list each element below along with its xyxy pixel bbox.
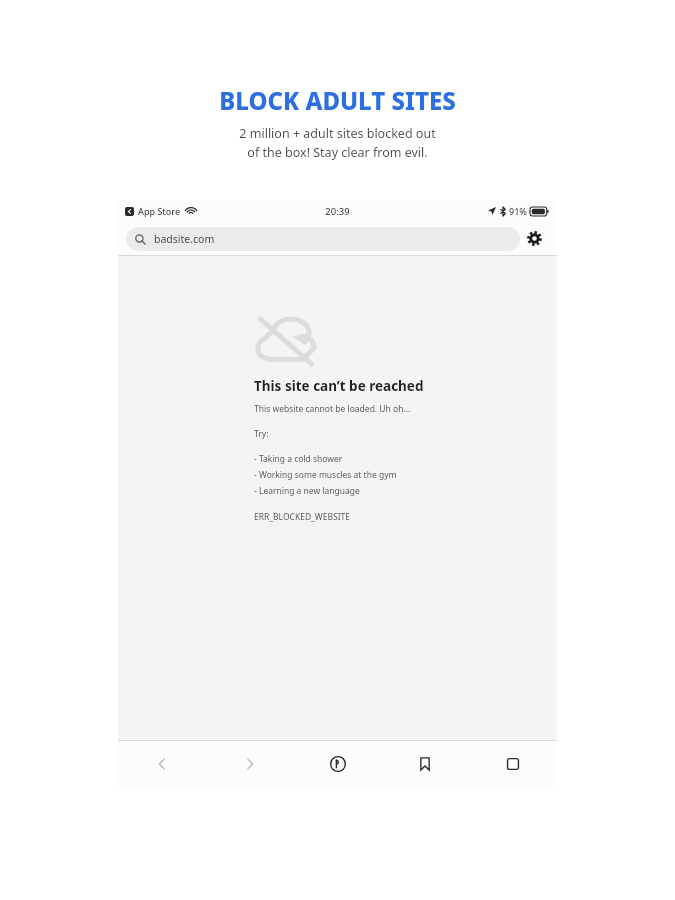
button[interactable]: Back <box>140 744 184 784</box>
button[interactable]: badsite.com <box>126 227 520 251</box>
staticText: - Taking a cold shower <box>254 453 343 465</box>
staticText: 2 million + adult sites blocked out <box>239 125 436 142</box>
staticText: App Store <box>138 205 181 217</box>
button[interactable]: Forward <box>228 744 272 784</box>
button[interactable]: Settings <box>520 224 549 253</box>
button[interactable]: Reader mode <box>316 744 360 784</box>
staticText: Try: <box>254 428 269 440</box>
staticText: BLOCK ADULT SITES <box>219 84 456 117</box>
staticText: of the box! Stay clear from evil. <box>247 144 428 161</box>
staticText: - Learning a new language <box>254 485 360 497</box>
staticText: badsite.com <box>154 232 215 246</box>
staticText: 91% <box>509 205 527 217</box>
staticText: 20:39 <box>325 205 350 218</box>
staticText: - Working some muscles at the gym <box>254 469 397 481</box>
button[interactable]: Bookmarks <box>403 744 447 784</box>
button[interactable]: Tabs <box>491 744 535 784</box>
staticText: This website cannot be loaded. Uh oh... <box>254 403 411 415</box>
staticText: ERR_BLOCKED_WEBSITE <box>254 511 351 523</box>
staticText: This site can’t be reached <box>254 377 424 395</box>
